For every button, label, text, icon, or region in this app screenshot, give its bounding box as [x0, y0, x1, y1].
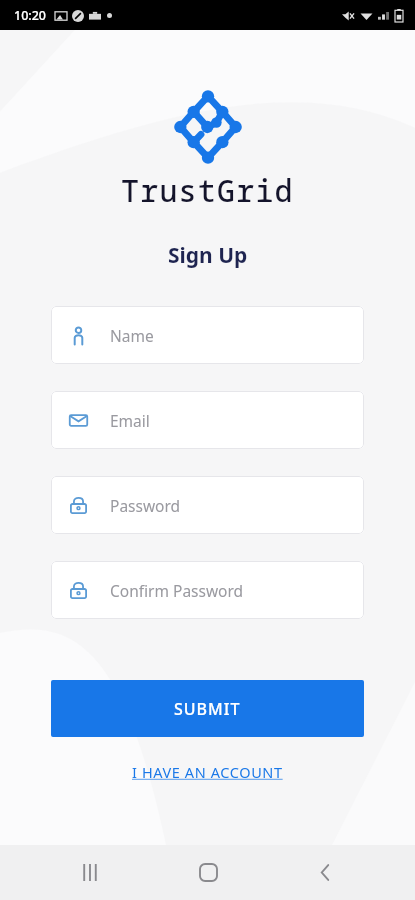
button[interactable]: Back	[297, 845, 353, 900]
staticText: 10:20	[14, 7, 47, 24]
button[interactable]: Confirm Password	[51, 561, 364, 619]
button[interactable]: I HAVE AN ACCOUNT	[124, 758, 291, 786]
button[interactable]: Recent apps	[62, 845, 118, 900]
staticText: Name	[110, 325, 154, 346]
staticText: Confirm Password	[110, 580, 244, 601]
staticText: I HAVE AN ACCOUNT	[132, 762, 283, 782]
button[interactable]: Email	[51, 391, 364, 449]
staticText: Email	[110, 410, 150, 431]
staticText: TrustGrid	[121, 170, 294, 211]
button[interactable]: Password	[51, 476, 364, 534]
button[interactable]: Name	[51, 306, 364, 364]
button[interactable]: Home	[180, 845, 236, 900]
staticText: Password	[110, 495, 181, 516]
staticText: Sign Up	[168, 241, 248, 270]
staticText: SUBMIT	[174, 698, 241, 720]
button[interactable]: SUBMIT	[51, 680, 364, 737]
